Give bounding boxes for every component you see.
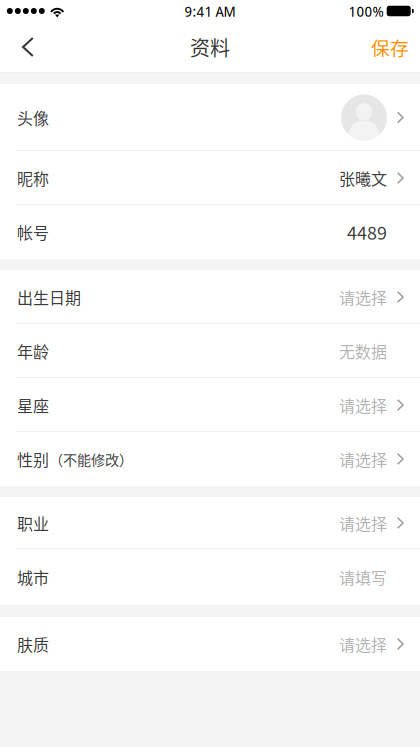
staticText: 性别 <box>17 447 49 471</box>
staticText: 保存 <box>371 33 409 60</box>
button[interactable]: 年龄 <box>0 324 420 378</box>
staticText: 无数据 <box>339 339 387 363</box>
staticText: 资料 <box>190 32 230 61</box>
staticText: 100% <box>348 1 383 21</box>
staticText: 出生日期 <box>17 285 81 309</box>
staticText: 请选择 <box>339 285 387 309</box>
staticText: 头像 <box>17 106 49 129</box>
staticText: 职业 <box>17 511 49 535</box>
staticText: 4489 <box>347 219 387 245</box>
staticText: 星座 <box>17 393 49 417</box>
button[interactable]: 出生日期 <box>0 270 420 324</box>
staticText: 请填写 <box>339 565 387 589</box>
staticText: （不能修改） <box>49 449 133 469</box>
staticText: 帐号 <box>17 220 49 244</box>
staticText: 昵称 <box>17 166 49 190</box>
button[interactable]: 城市 <box>0 549 420 605</box>
button[interactable]: 头像 <box>0 84 420 151</box>
button[interactable]: 返回 <box>6 22 50 72</box>
button[interactable]: 保存 <box>360 22 420 72</box>
button[interactable]: 昵称 <box>0 151 420 205</box>
staticText: 肤质 <box>17 632 49 656</box>
staticText: 9:41 AM <box>184 1 235 21</box>
button[interactable]: 星座 <box>0 378 420 432</box>
staticText: 请选择 <box>339 447 387 471</box>
staticText: 请选择 <box>339 511 387 535</box>
button[interactable]: 肤质 <box>0 617 420 671</box>
button[interactable]: 职业 <box>0 497 420 549</box>
button[interactable]: 性别 <box>0 432 420 486</box>
staticText: 城市 <box>17 565 49 589</box>
button[interactable]: 帐号 <box>0 205 420 259</box>
staticText: 张曦文 <box>339 166 387 190</box>
staticText: 请选择 <box>339 393 387 417</box>
staticText: 年龄 <box>17 339 49 363</box>
staticText: 请选择 <box>339 632 387 656</box>
